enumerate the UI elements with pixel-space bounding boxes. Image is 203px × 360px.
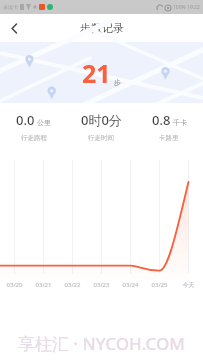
staticText: 0.0 [16, 111, 35, 129]
staticText: 03/23 [87, 281, 116, 289]
staticText: 03/22 [58, 281, 87, 289]
button[interactable]: 0.0 [0, 111, 67, 142]
staticText: 未读卡 [3, 4, 18, 10]
staticText: 100% 19:22 [173, 4, 200, 11]
staticText: 行走路程 [21, 134, 47, 142]
button[interactable]: 0时0分 [67, 111, 135, 142]
staticText: 今天 [174, 281, 203, 289]
button[interactable]: 0.8 [135, 111, 203, 142]
staticText: 21 [82, 56, 111, 90]
staticText: 03/25 [145, 281, 174, 289]
staticText: 0时0分 [81, 111, 122, 129]
staticText: 步 [114, 78, 121, 87]
staticText: 千卡 [173, 118, 187, 127]
button[interactable]: Back [0, 14, 28, 42]
staticText: 卡路里 [159, 134, 179, 142]
staticText: 03/24 [116, 281, 145, 289]
staticText: 行走时间 [88, 134, 114, 142]
staticText: 03/20 [0, 281, 29, 289]
staticText: 步数记录 [80, 21, 124, 35]
staticText: 公里 [37, 118, 51, 127]
staticText: 03/21 [29, 281, 58, 289]
staticText: 享柱汇 · NYCOH.COM [18, 332, 185, 355]
staticText: 0.8 [152, 111, 171, 129]
